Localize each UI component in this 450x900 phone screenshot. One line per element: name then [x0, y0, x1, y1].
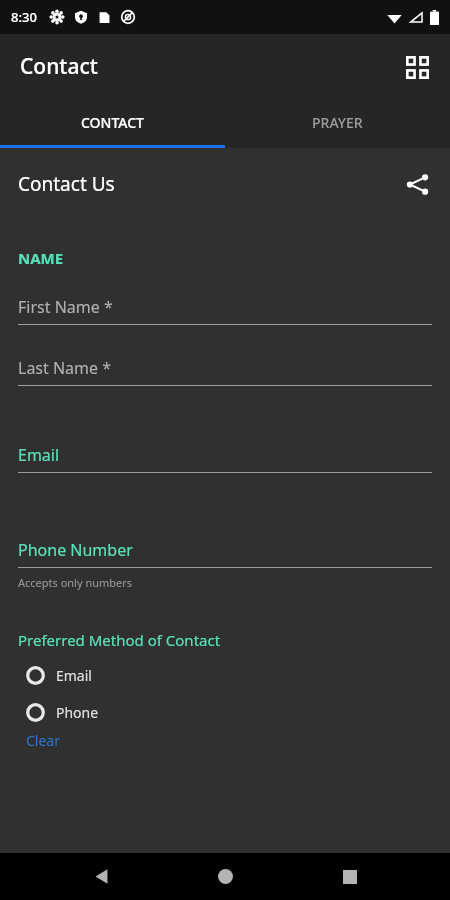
button[interactable]: Phone — [0, 694, 450, 731]
staticText: Phone — [56, 703, 99, 722]
button[interactable]: PRAYER — [225, 99, 450, 145]
staticText: Clear — [26, 731, 60, 750]
staticText: Accepts only numbers — [18, 575, 133, 590]
staticText: Last Name * — [18, 357, 112, 379]
button[interactable]: Grid view — [393, 43, 441, 91]
staticText: PRAYER — [312, 113, 363, 132]
button[interactable]: Recents — [326, 853, 374, 900]
staticText: Email — [18, 444, 60, 466]
staticText: 8:30 — [11, 8, 37, 26]
staticText: First Name * — [18, 296, 113, 318]
button[interactable]: CONTACT — [0, 99, 225, 145]
staticText: CONTACT — [81, 113, 144, 132]
button[interactable]: Clear — [26, 731, 60, 750]
button[interactable]: Home — [201, 853, 249, 900]
staticText: Contact Us — [18, 171, 396, 197]
staticText: Contact — [20, 52, 98, 81]
button[interactable]: Share — [396, 163, 438, 205]
button[interactable]: Back — [77, 853, 125, 900]
staticText: Email — [56, 666, 92, 685]
staticText: Preferred Method of Contact — [18, 630, 221, 650]
button[interactable]: Email — [0, 657, 450, 694]
staticText: NAME — [18, 248, 64, 268]
staticText: Phone Number — [18, 539, 133, 561]
